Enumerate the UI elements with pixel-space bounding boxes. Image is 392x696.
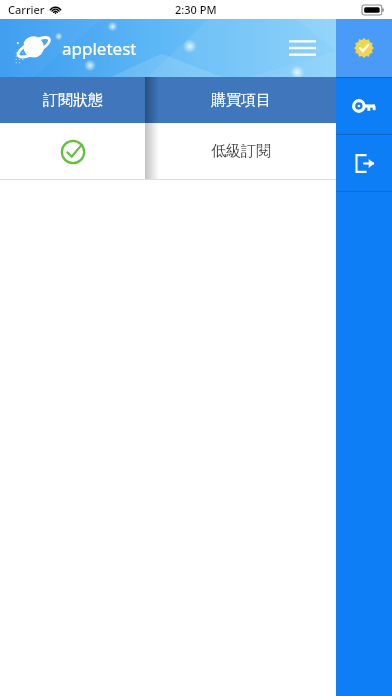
staticText: 訂閱狀態 bbox=[43, 91, 103, 110]
staticText: 2:30 PM bbox=[175, 2, 217, 17]
button[interactable]: Subscribed bbox=[0, 123, 145, 180]
staticText: 購買項目 bbox=[211, 91, 271, 110]
button[interactable]: Menu bbox=[280, 26, 324, 70]
staticText: Carrier bbox=[8, 2, 45, 17]
button[interactable]: 低級訂閱 bbox=[145, 123, 336, 180]
staticText: 低級訂閱 bbox=[211, 142, 271, 161]
other: Subscribed bbox=[60, 139, 86, 165]
button[interactable]: Verified bbox=[336, 19, 392, 77]
button[interactable]: 購買項目 bbox=[145, 77, 336, 123]
button[interactable]: Password bbox=[336, 78, 392, 134]
staticText: appletest bbox=[62, 37, 137, 60]
button[interactable]: Log out bbox=[336, 135, 392, 191]
button[interactable]: 訂閱狀態 bbox=[0, 77, 145, 123]
